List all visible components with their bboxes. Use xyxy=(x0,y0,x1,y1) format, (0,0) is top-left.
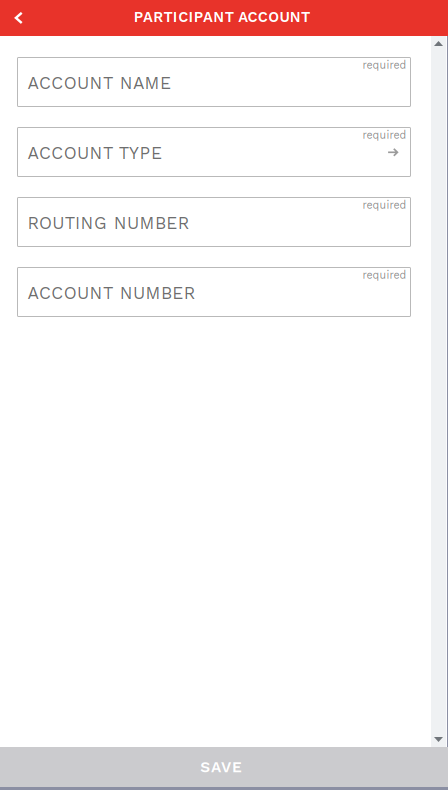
button[interactable]: Scroll down xyxy=(431,732,446,747)
button[interactable]: SAVE xyxy=(0,747,448,787)
staticText: ACCOUNT TYPE xyxy=(27,143,168,163)
staticText: required xyxy=(362,129,406,141)
button[interactable]: Scroll up xyxy=(431,36,446,51)
staticText: SAVE xyxy=(200,758,248,776)
staticText: ACCOUNT NAME xyxy=(27,73,177,93)
button[interactable]: required xyxy=(17,197,410,246)
staticText: ACCOUNT NUMBER xyxy=(27,283,202,303)
staticText: PARTICIPANT ACCOUNT xyxy=(134,8,314,26)
button[interactable]: required xyxy=(17,267,410,316)
staticText: required xyxy=(362,269,406,281)
button[interactable]: required xyxy=(17,127,410,176)
button[interactable]: Back xyxy=(0,0,38,36)
button[interactable]: required xyxy=(17,57,410,106)
staticText: ROUTING NUMBER xyxy=(27,213,196,233)
staticText: required xyxy=(362,59,406,71)
staticText: required xyxy=(362,199,406,211)
